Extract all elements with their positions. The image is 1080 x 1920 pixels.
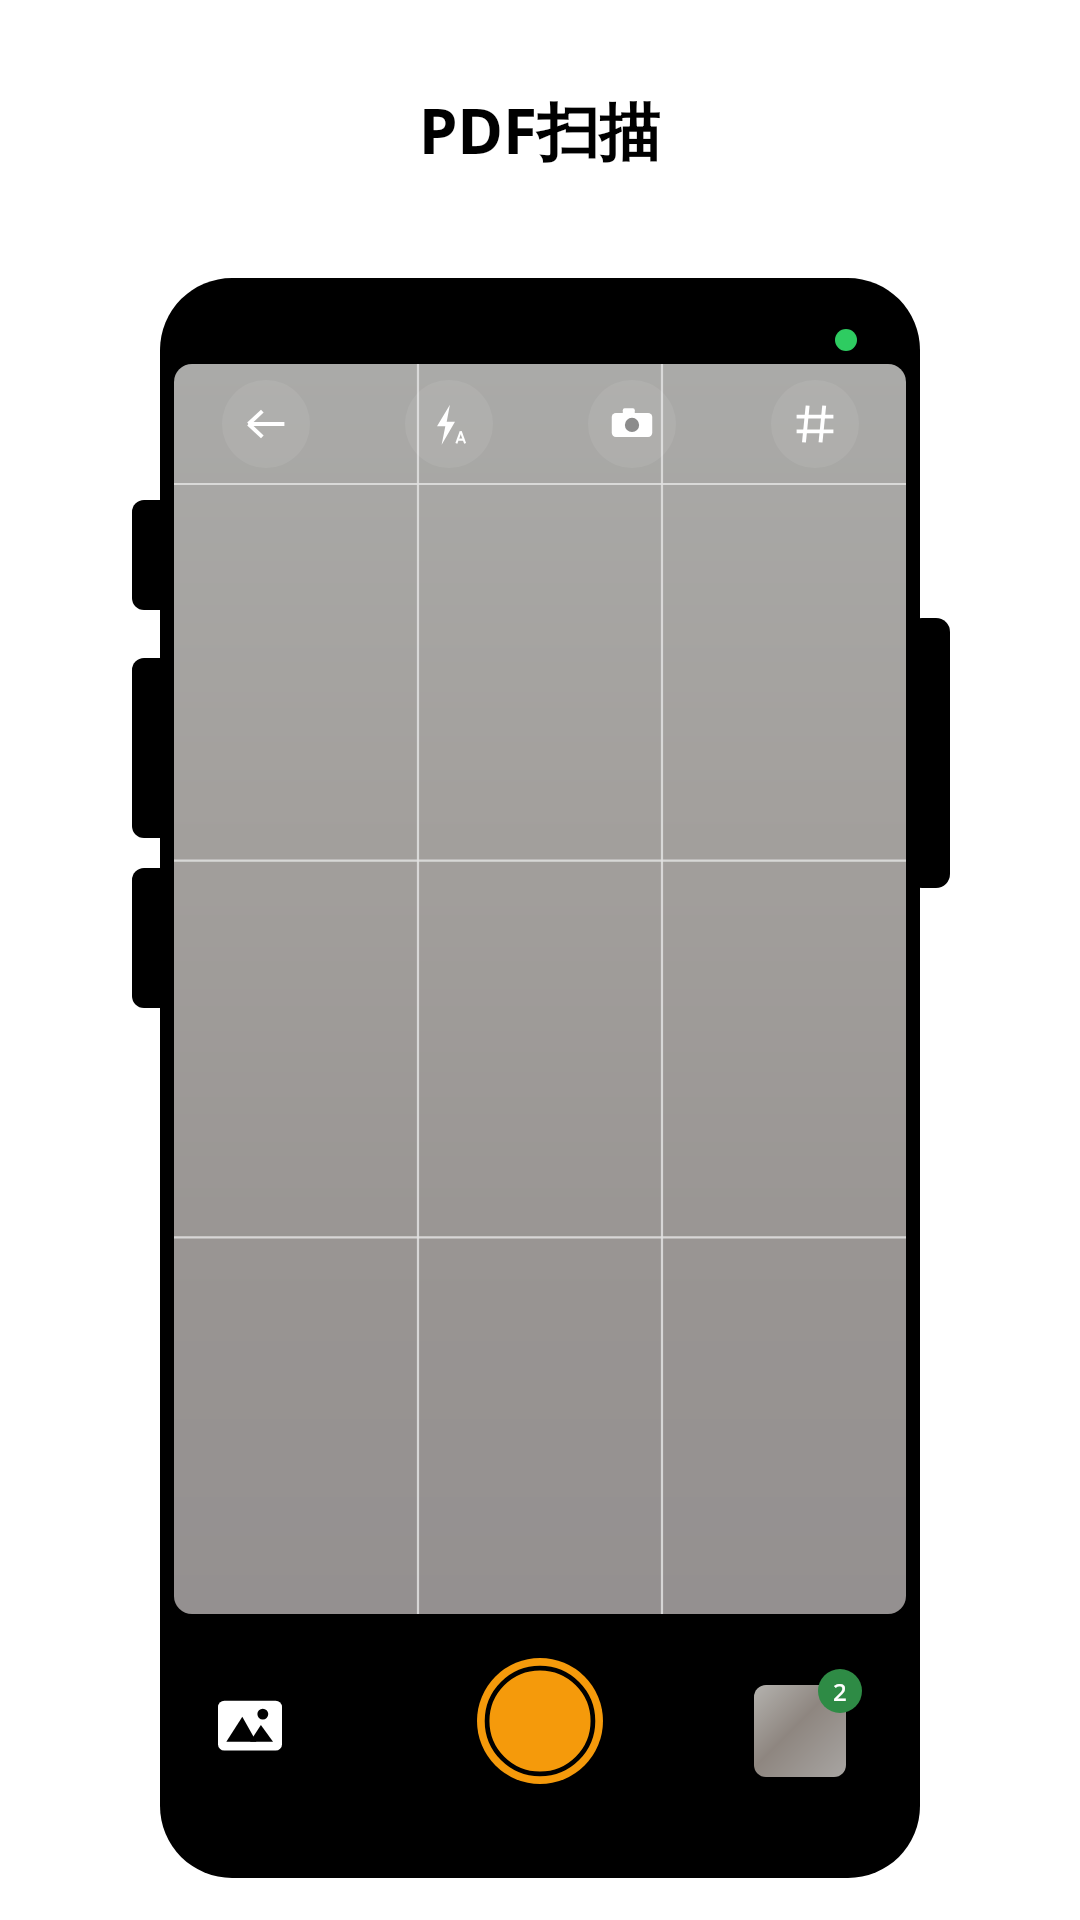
staticText: 2	[833, 1675, 847, 1708]
button[interactable]: Gallery	[218, 1693, 282, 1757]
button[interactable]: Switch camera	[588, 380, 676, 468]
button[interactable]: Shutter	[477, 1658, 603, 1784]
button[interactable]: Back	[222, 380, 310, 468]
button[interactable]: Grid	[771, 380, 859, 468]
button[interactable]: Recent scans, 2	[754, 1669, 862, 1777]
staticText: PDF扫描	[0, 88, 1080, 173]
button[interactable]: Flash auto	[405, 380, 493, 468]
